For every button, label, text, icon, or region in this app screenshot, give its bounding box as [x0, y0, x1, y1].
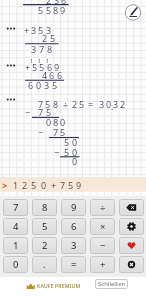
staticText: 3: [54, 0, 60, 6]
staticText: 5: [39, 61, 45, 73]
staticText: 8: [42, 201, 48, 214]
button[interactable]: 3: [61, 237, 86, 254]
staticText: 7: [53, 126, 59, 138]
staticText: 1: [38, 57, 42, 64]
staticText: 5: [60, 126, 66, 138]
staticText: .: [43, 258, 46, 271]
staticText: 8: [53, 98, 59, 110]
button[interactable]: [125, 5, 141, 21]
button[interactable]: [119, 199, 144, 216]
button[interactable]: ×: [90, 218, 115, 235]
staticText: 0: [106, 98, 112, 110]
staticText: 6: [57, 69, 63, 81]
staticText: 1: [13, 239, 19, 252]
staticText: 2: [42, 32, 48, 44]
staticText: =: [71, 258, 77, 271]
staticText: 5: [31, 179, 37, 191]
staticText: 1: [46, 57, 50, 64]
staticText: 2: [22, 179, 28, 191]
staticText: 0: [72, 136, 78, 148]
staticText: 7: [13, 201, 19, 214]
staticText: ÷: [100, 201, 106, 214]
button[interactable]: 6: [61, 218, 86, 235]
staticText: 8: [47, 43, 53, 55]
button[interactable]: [119, 218, 144, 235]
staticText: 3: [31, 24, 37, 36]
button[interactable]: 4: [3, 218, 28, 235]
staticText: 4: [42, 69, 48, 81]
staticText: 7: [60, 179, 66, 191]
staticText: ÷: [63, 98, 69, 110]
button[interactable]: 5: [32, 218, 57, 235]
staticText: .: [111, 100, 114, 112]
button[interactable]: +: [90, 256, 115, 273]
staticText: 9: [76, 179, 82, 191]
staticText: 2: [46, 0, 52, 6]
button[interactable]: [119, 237, 144, 254]
staticText: Schließen: [98, 280, 126, 288]
staticText: 1: [13, 179, 19, 191]
button[interactable]: [0, 177, 146, 192]
staticText: 9: [54, 61, 60, 73]
staticText: 5: [42, 220, 48, 233]
button[interactable]: 1: [3, 237, 28, 254]
staticText: 2: [42, 239, 48, 252]
button[interactable]: 7: [3, 199, 28, 216]
staticText: 9: [60, 4, 66, 16]
button[interactable]: 0: [3, 256, 28, 273]
button[interactable]: KAUFE PREMIUM: [37, 279, 89, 292]
staticText: 7: [38, 106, 44, 118]
staticText: +: [100, 258, 106, 271]
staticText: 5: [38, 24, 44, 36]
staticText: 0: [60, 116, 66, 128]
staticText: 2: [72, 98, 78, 110]
staticText: +: [25, 61, 31, 73]
staticText: 4: [13, 220, 19, 233]
button[interactable]: −: [90, 237, 115, 254]
staticText: KAUFE PREMIUM: [37, 282, 81, 289]
staticText: 2: [120, 98, 126, 110]
staticText: 3: [44, 79, 50, 91]
button[interactable]: .: [32, 256, 57, 273]
staticText: 5: [38, 4, 44, 16]
staticText: +: [51, 179, 57, 191]
staticText: −: [54, 146, 60, 158]
staticText: 7: [38, 98, 44, 110]
button[interactable]: =: [61, 256, 86, 273]
staticText: 6: [49, 69, 55, 81]
staticText: =: [88, 98, 94, 110]
button[interactable]: 8: [32, 199, 57, 216]
staticText: 5: [64, 136, 70, 148]
staticText: 6: [61, 0, 67, 6]
staticText: 0: [36, 79, 42, 91]
staticText: 5: [32, 61, 38, 73]
button[interactable]: 9: [61, 199, 86, 216]
staticText: 3: [99, 98, 105, 110]
staticText: 0: [72, 155, 78, 167]
button[interactable]: 2: [32, 237, 57, 254]
staticText: 6: [28, 79, 34, 91]
staticText: 6: [71, 220, 77, 233]
staticText: 5: [64, 146, 70, 158]
staticText: 0: [41, 179, 47, 191]
staticText: 3: [71, 239, 77, 252]
staticText: 0: [72, 146, 78, 158]
staticText: ×: [100, 220, 106, 233]
button[interactable]: Schließen: [95, 279, 128, 289]
staticText: 0: [46, 116, 52, 128]
staticText: 5: [46, 4, 52, 16]
staticText: −: [100, 239, 106, 252]
button[interactable]: [119, 256, 144, 273]
staticText: −: [38, 126, 44, 138]
staticText: −: [25, 106, 31, 118]
staticText: +: [24, 24, 30, 36]
staticText: 0: [13, 258, 19, 271]
staticText: 5: [46, 106, 52, 118]
staticText: 1: [30, 57, 34, 64]
staticText: 8: [53, 116, 59, 128]
staticText: 3: [31, 43, 37, 55]
staticText: 9: [71, 201, 77, 214]
staticText: 6: [47, 61, 53, 73]
staticText: 5: [52, 79, 58, 91]
button[interactable]: ÷: [90, 199, 115, 216]
